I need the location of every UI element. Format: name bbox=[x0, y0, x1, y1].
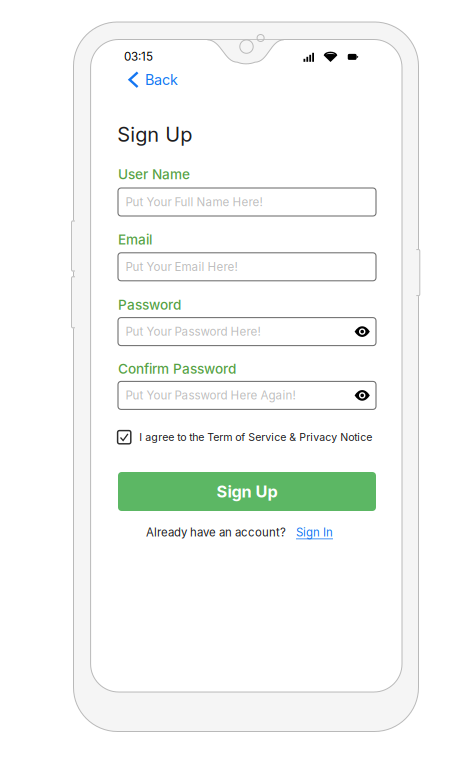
staticText: Sign Up bbox=[216, 482, 277, 501]
staticText: Email bbox=[118, 231, 152, 248]
staticText: Back bbox=[145, 71, 178, 88]
button[interactable]: Show password bbox=[354, 326, 370, 337]
button[interactable]: Sign Up bbox=[118, 472, 376, 511]
staticText: User Name bbox=[118, 166, 190, 182]
button[interactable]: Sign In bbox=[296, 525, 333, 539]
staticText: Confirm Password bbox=[118, 360, 236, 377]
staticText: Password bbox=[118, 297, 181, 313]
staticText: Put Your Password Here! bbox=[125, 325, 260, 339]
staticText: Put Your Password Here Again! bbox=[125, 388, 295, 402]
button[interactable]: Show password bbox=[354, 390, 370, 401]
staticText: Sign In bbox=[296, 525, 333, 539]
staticText: I agree to the Term of Service & Privacy… bbox=[139, 431, 372, 444]
staticText: Already have an account? bbox=[146, 525, 286, 539]
staticText: 03:15 bbox=[124, 50, 153, 64]
staticText: Sign Up bbox=[117, 122, 192, 147]
button[interactable]: I agree to the Term of Service & Privacy… bbox=[118, 429, 372, 446]
staticText: Put Your Full Name Here! bbox=[125, 195, 262, 209]
button[interactable]: Back bbox=[123, 68, 183, 91]
staticText: Put Your Email Here! bbox=[125, 260, 237, 274]
